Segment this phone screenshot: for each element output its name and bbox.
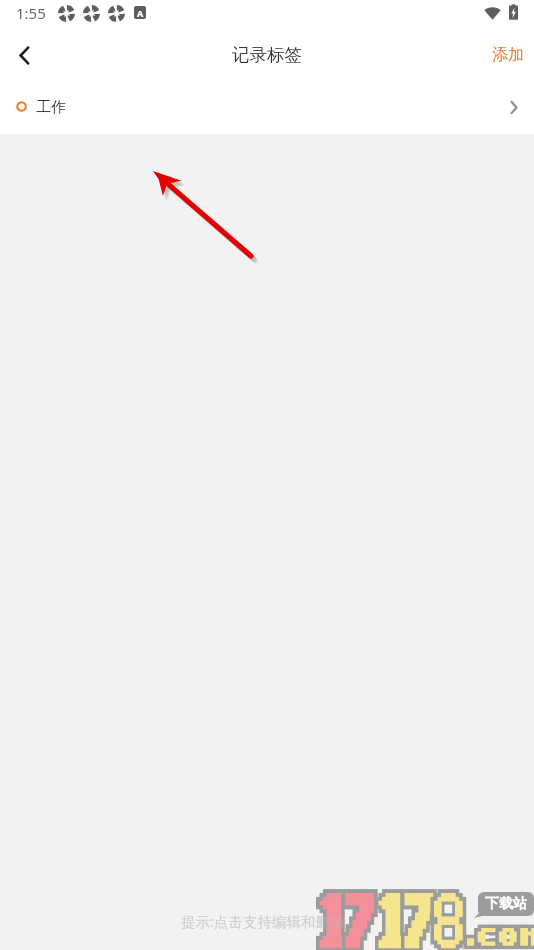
other: Open tag	[510, 101, 518, 114]
button[interactable]: Back	[0, 31, 48, 79]
button[interactable]: 添加	[476, 35, 534, 75]
staticText: 下载站	[485, 895, 527, 913]
staticText: 提示:点击支持编辑和删除	[181, 911, 345, 931]
staticText: 1:55	[16, 3, 46, 23]
staticText: 记录标签	[232, 44, 302, 66]
staticText: A	[137, 7, 144, 19]
staticText: 添加	[492, 45, 524, 65]
button[interactable]: 工作	[0, 81, 534, 134]
staticText: 工作	[36, 98, 66, 117]
